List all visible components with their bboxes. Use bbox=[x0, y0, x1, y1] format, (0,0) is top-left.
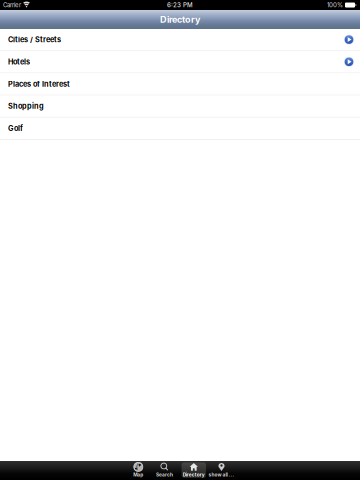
staticText: Shopping bbox=[8, 102, 44, 111]
button[interactable]: Shopping bbox=[0, 96, 360, 118]
button[interactable]: Search bbox=[151, 461, 177, 480]
staticText: Cities / Streets bbox=[8, 35, 61, 44]
button[interactable]: Places of Interest bbox=[0, 73, 360, 96]
staticText: Search bbox=[156, 472, 173, 478]
staticText: show all ... bbox=[208, 472, 234, 478]
staticText: Map bbox=[133, 472, 143, 478]
button[interactable]: Cities / Streets bbox=[0, 29, 360, 51]
button[interactable]: Golf bbox=[0, 118, 360, 140]
button[interactable]: Directory bbox=[181, 461, 207, 480]
staticText: Directory bbox=[183, 472, 205, 478]
staticText: Carrier bbox=[3, 1, 21, 9]
staticText: Directory bbox=[160, 14, 200, 25]
staticText: 100% bbox=[327, 1, 343, 9]
button[interactable]: show all ... bbox=[205, 461, 237, 480]
button[interactable]: Map bbox=[125, 461, 151, 480]
staticText: Hotels bbox=[8, 57, 30, 66]
button[interactable]: Hotels bbox=[0, 51, 360, 73]
staticText: Golf bbox=[8, 124, 23, 133]
staticText: 6:23 PM bbox=[167, 1, 193, 9]
staticText: Places of Interest bbox=[8, 80, 70, 88]
